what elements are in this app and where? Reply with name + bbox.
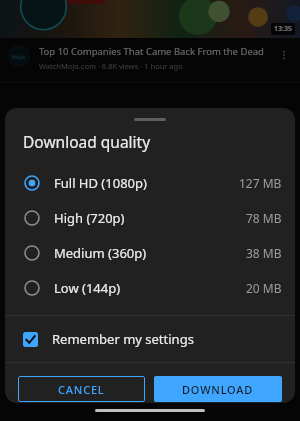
staticText: High (720p) [54, 209, 125, 227]
staticText: 13:35 [274, 24, 292, 34]
staticText: 20 MB [246, 280, 282, 296]
staticText: Remember my settings [52, 330, 194, 348]
staticText: Download quality [23, 131, 151, 152]
staticText: MoJo [12, 53, 26, 60]
button[interactable]: More options [274, 45, 294, 65]
button[interactable]: Low (144p) [5, 270, 295, 305]
staticText: DOWNLOAD [182, 382, 254, 397]
button[interactable]: Medium (360p) [5, 235, 295, 270]
button[interactable]: Full HD (1080p) [5, 165, 295, 200]
staticText: Low (144p) [54, 279, 121, 297]
staticText: WatchMojo.com · 6.8K views · 1 hour ago [39, 61, 183, 71]
staticText: 38 MB [246, 245, 282, 261]
staticText: CANCEL [58, 382, 105, 397]
button[interactable]: CANCEL [18, 376, 145, 402]
button[interactable]: DOWNLOAD [154, 376, 282, 402]
button[interactable]: MoJo [8, 45, 30, 67]
staticText: 127 MB [239, 175, 282, 191]
staticText: 78 MB [246, 210, 282, 226]
staticText: Medium (360p) [54, 244, 147, 262]
staticText: Full HD (1080p) [54, 174, 147, 192]
button[interactable]: High (720p) [5, 200, 295, 235]
staticText: Top 10 Companies That Came Back From the… [39, 45, 264, 58]
button[interactable]: Remember my settings [5, 316, 295, 362]
